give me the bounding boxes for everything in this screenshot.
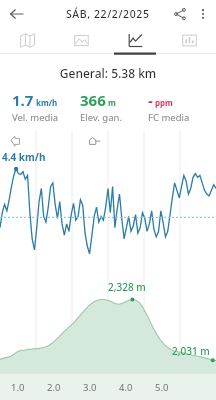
staticText: 1.0: [11, 381, 25, 394]
staticText: 2,031 m: [172, 344, 210, 358]
staticText: FC media: [148, 111, 190, 124]
button[interactable]: Stats: [162, 27, 216, 53]
staticText: 2.0: [47, 381, 61, 394]
staticText: ppm: [155, 97, 173, 108]
staticText: 5.0: [155, 381, 169, 394]
staticText: 1.7: [12, 90, 34, 110]
button[interactable]: Photos: [54, 27, 108, 53]
staticText: 4.0: [119, 381, 133, 394]
staticText: 4.4 km/h: [2, 150, 46, 164]
staticText: Elev. gan.: [80, 111, 122, 124]
staticText: SÁB, 22/2/2025: [66, 7, 150, 21]
button[interactable]: Charts: [108, 27, 162, 53]
staticText: 366: [80, 90, 106, 110]
button[interactable]: Share: [168, 2, 192, 26]
staticText: -: [148, 90, 153, 110]
staticText: Vel. media: [12, 111, 59, 124]
staticText: General: 5.38 km: [0, 65, 216, 81]
staticText: 2,328 m: [108, 280, 146, 294]
button[interactable]: Map: [0, 27, 54, 53]
button[interactable]: More options: [192, 2, 213, 26]
button[interactable]: Back: [4, 2, 28, 26]
staticText: 3.0: [83, 381, 97, 394]
staticText: m: [108, 97, 116, 108]
staticText: km/h: [36, 97, 58, 108]
